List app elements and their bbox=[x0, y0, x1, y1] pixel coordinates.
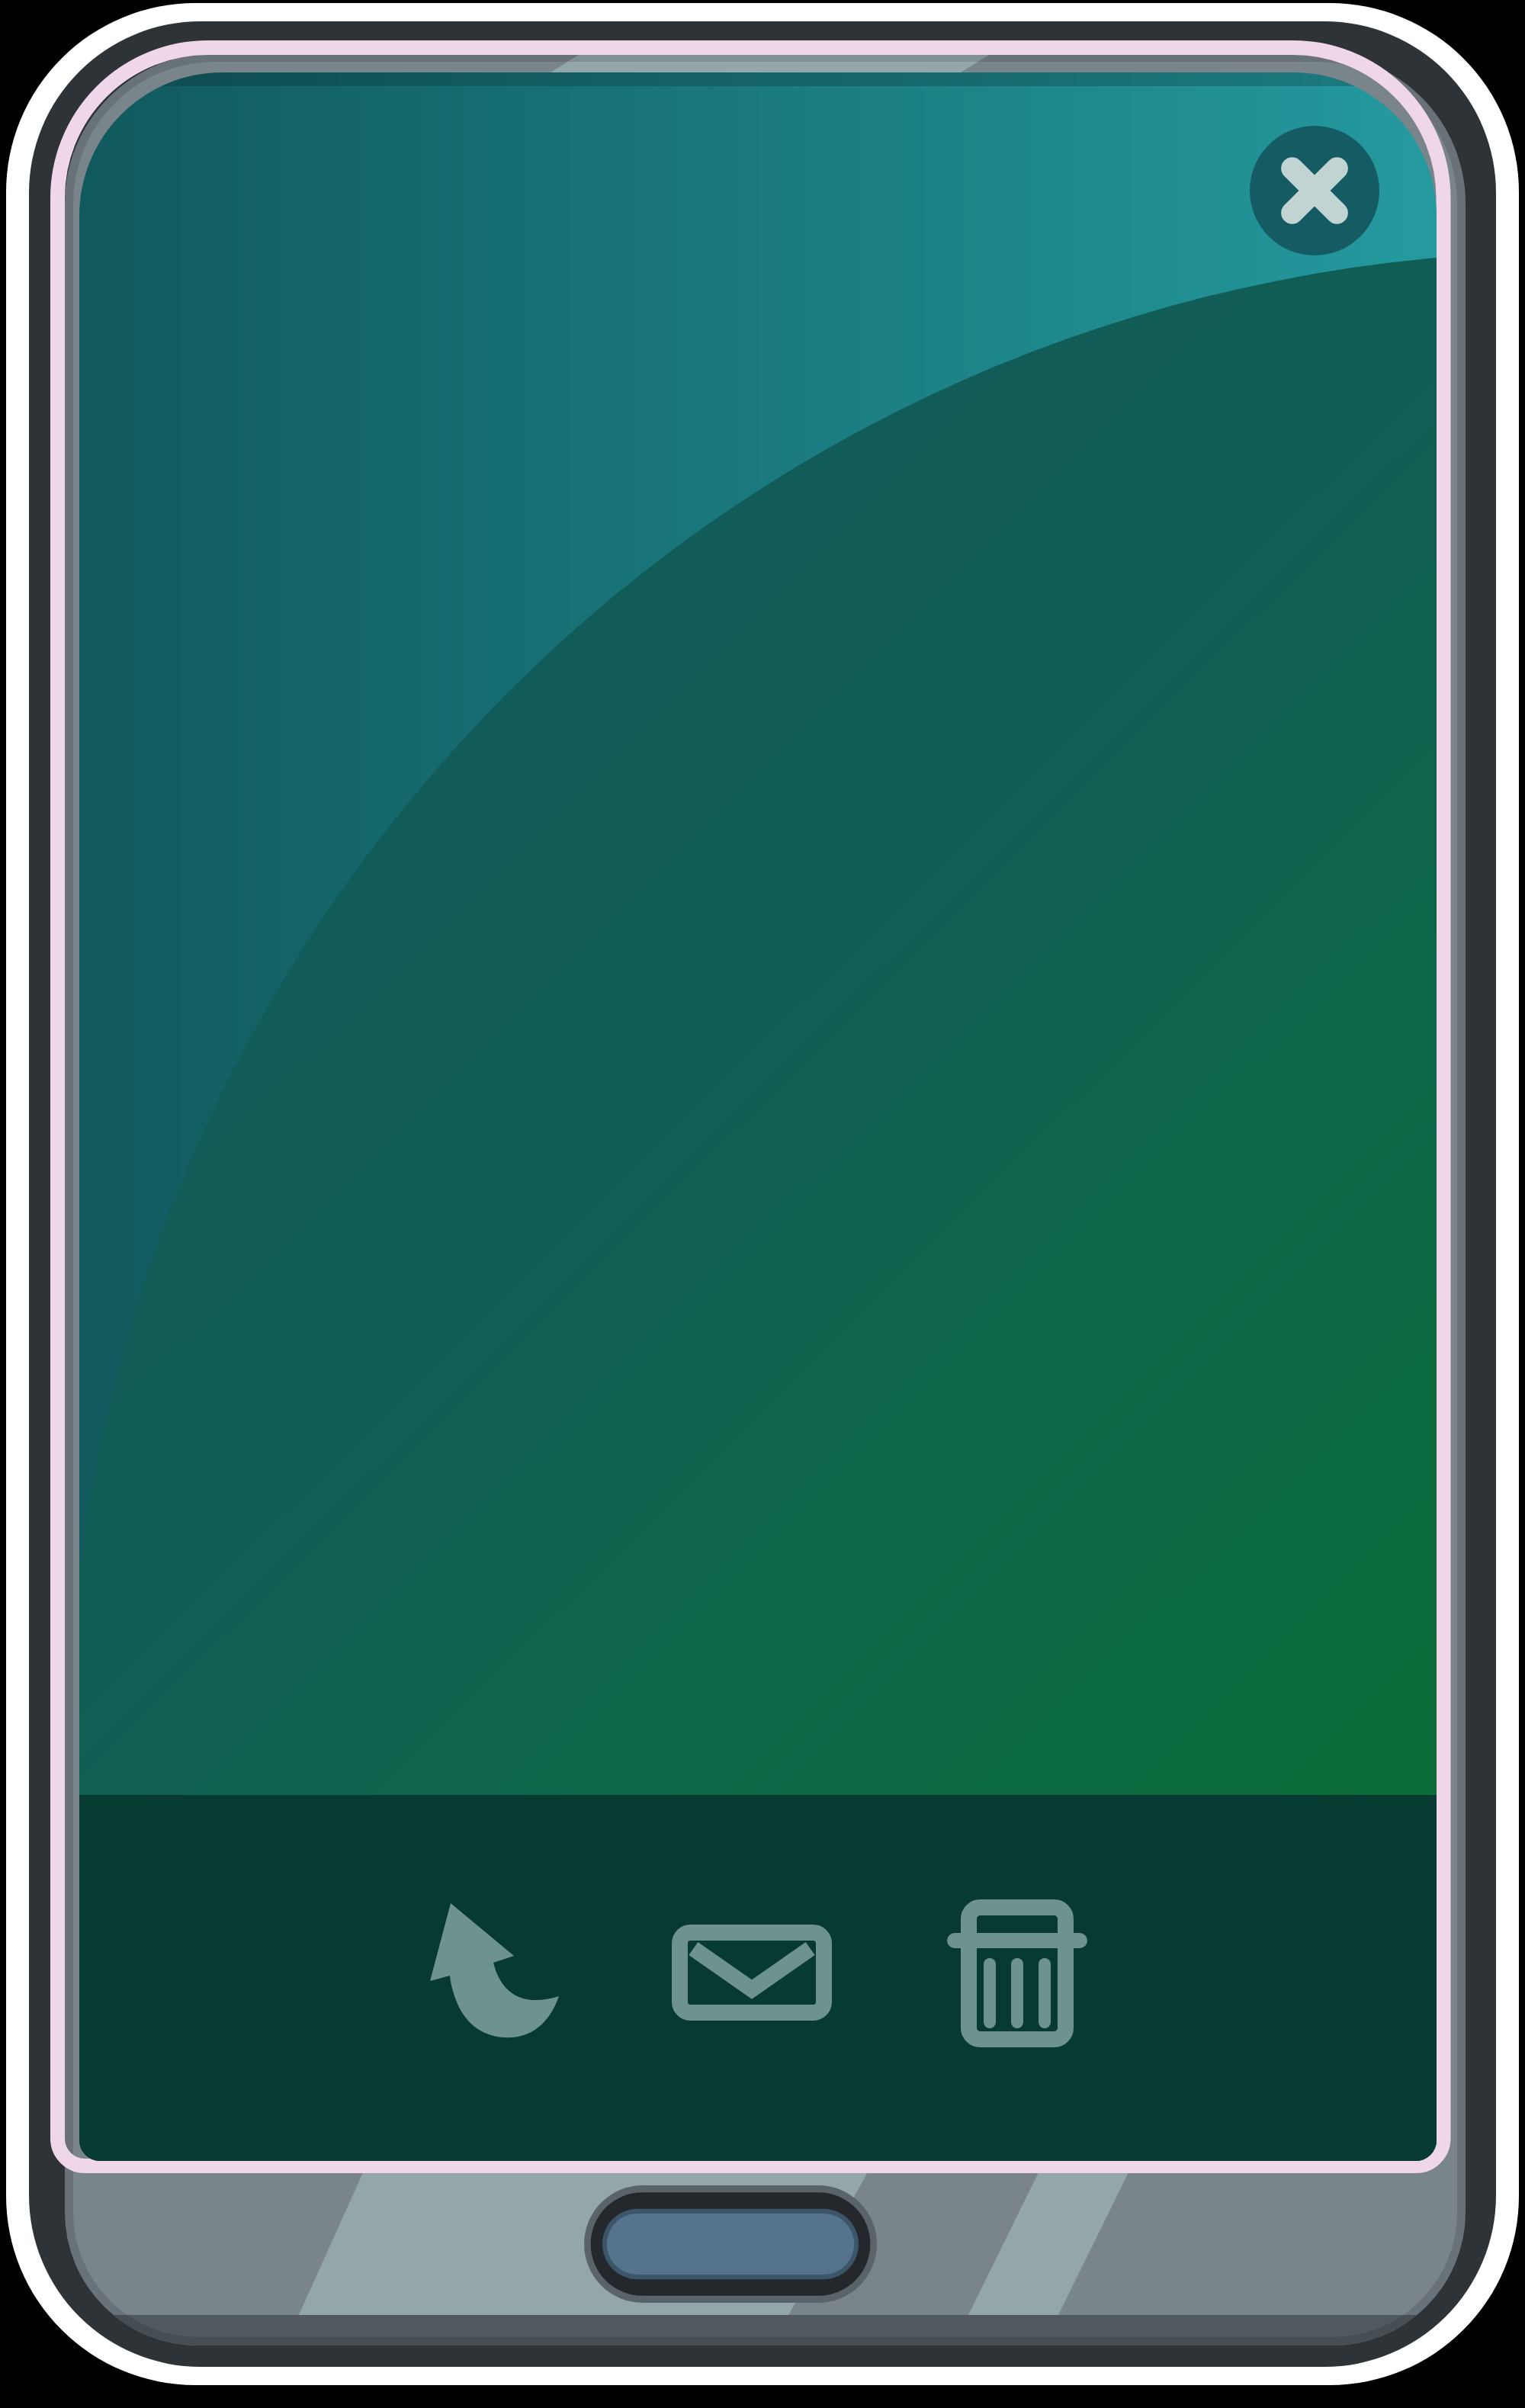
button[interactable]: Mail bbox=[667, 1918, 839, 2031]
button[interactable]: Reply bbox=[416, 1891, 576, 2050]
button[interactable]: Close bbox=[1241, 117, 1388, 264]
button[interactable]: Home bbox=[586, 2185, 878, 2303]
button[interactable]: Delete bbox=[942, 1895, 1094, 2051]
